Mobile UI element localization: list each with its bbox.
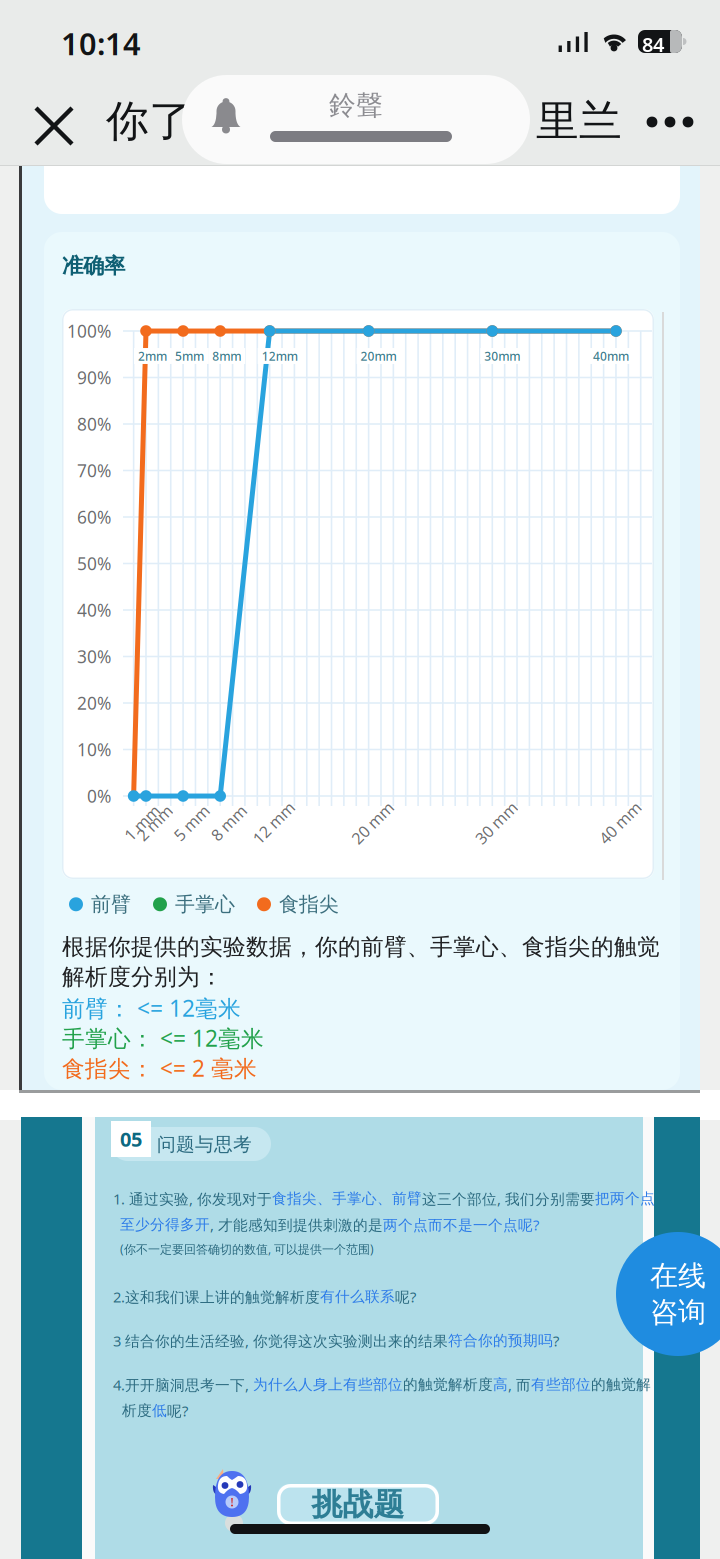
staticText: 你了	[106, 95, 192, 147]
staticText: 30mm	[484, 348, 520, 364]
staticText: 低	[152, 1402, 167, 1420]
staticText: 12mm	[262, 348, 298, 364]
staticText: 2 mm	[133, 812, 176, 833]
staticText: (你不一定要回答确切的数值, 可以提供一个范围)	[120, 1241, 374, 1257]
staticText: 10:14	[61, 23, 141, 64]
button[interactable]: 挑战题	[277, 1484, 439, 1525]
staticText: 食指尖、手掌心、前臂	[272, 1190, 422, 1208]
staticText: 的触觉解	[591, 1376, 651, 1394]
staticText: 20%	[77, 691, 111, 714]
staticText: 些部位	[358, 1376, 403, 1394]
staticText: 解析度分别为：	[62, 963, 223, 991]
staticText: 70%	[77, 459, 111, 482]
staticText: 问题与思考	[157, 1133, 252, 1156]
staticText: 20 mm	[347, 812, 399, 833]
staticText: 食指尖： <= 2 毫米	[62, 1053, 257, 1083]
staticText: 1. 通过实验, 你发现对于	[113, 1189, 272, 1208]
staticText: 这三个部位, 我们分别需要	[422, 1189, 595, 1208]
staticText: ?	[553, 1331, 559, 1350]
button[interactable]: Close	[30, 102, 78, 150]
staticText: 05	[120, 1126, 142, 1152]
staticText: 食指尖	[279, 892, 339, 917]
staticText: 0%	[87, 784, 111, 807]
staticText: 60%	[77, 505, 111, 528]
staticText: 的触觉解析度	[403, 1376, 493, 1394]
staticText: 4.开开脑洞思考一下,	[113, 1375, 253, 1394]
staticText: 挑战题	[311, 1486, 404, 1523]
staticText: 手掌心： <= 12毫米	[62, 1023, 264, 1053]
staticText: 80%	[77, 412, 111, 435]
staticText: 10%	[77, 738, 111, 761]
staticText: 鈴聲	[329, 89, 383, 122]
button[interactable]: More	[632, 92, 708, 152]
staticText: 40mm	[593, 348, 629, 364]
staticText: 40 mm	[594, 812, 646, 833]
staticText: 准确率	[62, 253, 125, 279]
staticText: 根据你提供的实验数据，你的前臂、手掌心、食指尖的触觉	[62, 933, 660, 961]
staticText: 为什么人身上有	[253, 1376, 358, 1394]
staticText: 8mm	[212, 348, 241, 364]
staticText: 5mm	[175, 348, 204, 364]
staticText: 把两个点	[595, 1190, 655, 1208]
staticText: 30%	[77, 645, 111, 668]
staticText: 高	[493, 1376, 508, 1394]
staticText: 有些部位	[531, 1376, 591, 1394]
staticText: , 而	[508, 1375, 531, 1394]
staticText: 里兰	[536, 95, 622, 147]
staticText: 20mm	[361, 348, 397, 364]
staticText: 84	[642, 31, 664, 58]
staticText: 咨询	[650, 1295, 706, 1329]
staticText: 2.这和我们课上讲的触觉解析度	[113, 1287, 320, 1306]
staticText: 40%	[77, 598, 111, 621]
staticText: 前臂： <= 12毫米	[62, 993, 241, 1023]
staticText: 手掌心	[175, 892, 235, 917]
staticText: 2mm	[138, 348, 167, 364]
staticText: 呢?	[395, 1287, 416, 1306]
staticText: 3 结合你的生活经验, 你觉得这次实验测出来的结果	[113, 1331, 448, 1350]
staticText: 90%	[77, 366, 111, 389]
staticText: 在线	[650, 1259, 706, 1293]
staticText: 析度	[122, 1402, 152, 1420]
staticText: 有什么联系	[320, 1288, 395, 1306]
staticText: 呢?	[167, 1401, 188, 1420]
staticText: 前臂	[91, 892, 131, 917]
staticText: , 才能感知到提供刺激的是	[210, 1215, 383, 1234]
staticText: 两个点而不是一个点呢?	[383, 1215, 539, 1234]
staticText: 30 mm	[470, 812, 522, 833]
button[interactable]: 在线咨询	[616, 1232, 720, 1356]
staticText: 1 mm	[121, 812, 164, 833]
staticText: 50%	[77, 552, 111, 575]
staticText: 12 mm	[248, 812, 300, 833]
staticText: 符合你的预期吗	[448, 1332, 553, 1350]
staticText: 至少分得多开	[120, 1216, 210, 1234]
staticText: 8 mm	[207, 812, 250, 833]
staticText: 100%	[67, 319, 111, 342]
staticText: 5 mm	[170, 812, 213, 833]
